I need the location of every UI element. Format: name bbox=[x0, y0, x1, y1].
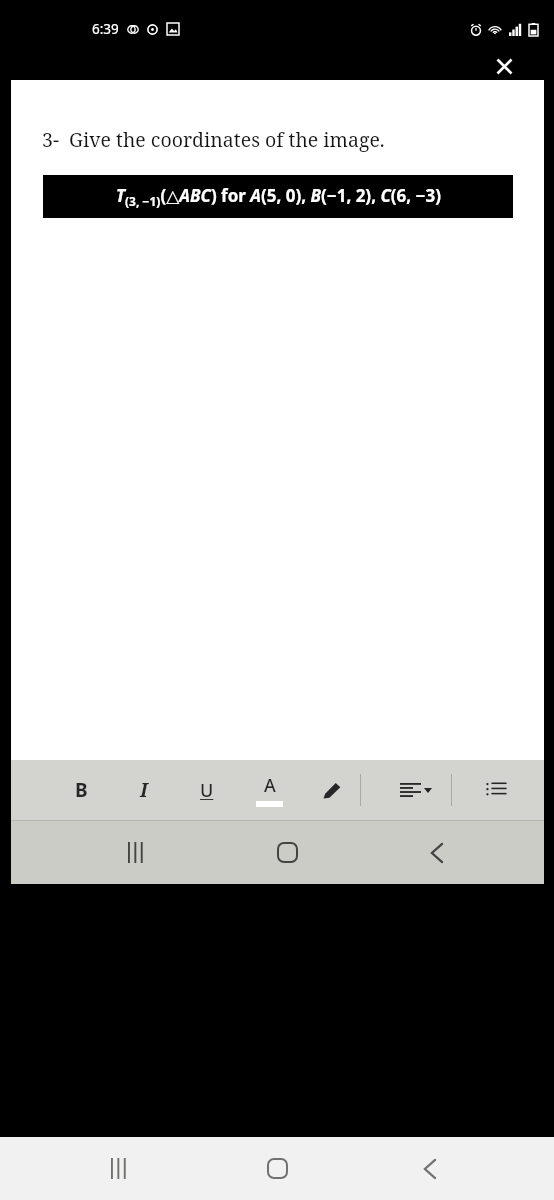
button[interactable]: Recent apps bbox=[88, 1137, 152, 1200]
button[interactable]: Close bbox=[483, 45, 526, 88]
button[interactable]: Back bbox=[405, 821, 469, 884]
button[interactable]: Underline bbox=[185, 760, 229, 820]
button[interactable]: Home bbox=[255, 821, 319, 884]
staticText: B bbox=[75, 777, 88, 803]
button[interactable]: Back bbox=[398, 1137, 462, 1200]
staticText: U bbox=[200, 778, 214, 803]
staticText: T(3, −1)(△ABC) for A(5, 0), B(−1, 2), C(… bbox=[116, 184, 441, 210]
staticText: I bbox=[140, 777, 148, 803]
staticText: 3- Give the coordinates of the image. bbox=[42, 126, 385, 153]
staticText: A bbox=[264, 773, 276, 798]
button[interactable]: Alignment bbox=[394, 760, 438, 820]
button[interactable]: Highlight bbox=[309, 760, 353, 820]
button[interactable]: Home bbox=[245, 1137, 309, 1200]
button[interactable]: Recent apps bbox=[105, 821, 169, 884]
button[interactable]: Bulleted list bbox=[474, 760, 518, 820]
button[interactable]: Bold bbox=[59, 760, 103, 820]
button[interactable]: Italic bbox=[122, 760, 166, 820]
button[interactable]: Text color bbox=[247, 760, 291, 820]
staticText: 6:39 bbox=[92, 20, 119, 38]
